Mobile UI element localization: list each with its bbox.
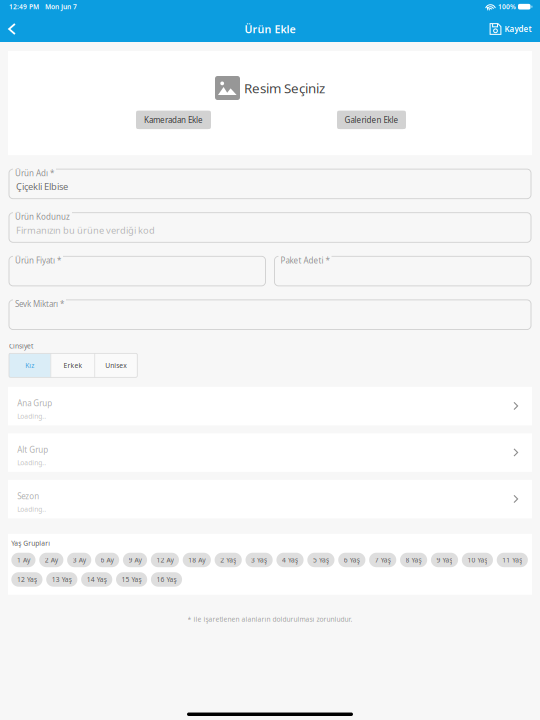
button[interactable]: 1 Ay	[11, 553, 35, 567]
button[interactable]: 2 Ay	[39, 553, 63, 567]
staticText: Firmanızın bu ürüne verdiği kod	[16, 224, 155, 236]
staticText: Galeriden Ekle	[344, 114, 398, 125]
button[interactable]: 10 Yaş	[462, 553, 493, 567]
staticText: Çiçekli Elbise	[16, 180, 68, 193]
staticText: Ürün Adı *	[15, 168, 54, 178]
button[interactable]: 2 Yaş	[215, 553, 242, 567]
button[interactable]: Sezon	[8, 480, 532, 518]
staticText: 12 Ay	[156, 555, 173, 564]
staticText: 9 Yaş	[436, 555, 452, 564]
staticText: Kaydet	[504, 24, 531, 34]
staticText: 12:49 PM Mon Jun 7	[9, 2, 77, 11]
staticText: 18 Ay	[188, 555, 205, 564]
staticText: Ana Grup	[17, 398, 52, 408]
button[interactable]: 18 Ay	[183, 553, 211, 567]
staticText: 6 Yaş	[344, 555, 360, 564]
button[interactable]: 9 Yaş	[431, 553, 458, 567]
staticText: 13 Yaş	[52, 575, 72, 584]
staticText: 7 Yaş	[375, 555, 391, 564]
staticText: Unisex	[105, 361, 127, 370]
button[interactable]: 11 Yaş	[497, 553, 528, 567]
staticText: 15 Yaş	[122, 575, 142, 584]
button[interactable]: 4 Yaş	[276, 553, 304, 567]
button[interactable]: 7 Yaş	[369, 553, 396, 567]
staticText: Kız	[25, 361, 34, 370]
button[interactable]: 15 Yaş	[116, 572, 147, 587]
button[interactable]: 16 Yaş	[151, 572, 182, 587]
button[interactable]: Erkek	[51, 353, 94, 377]
button[interactable]: Kaydet	[489, 16, 531, 42]
staticText: Ürün Fiyatı *	[15, 255, 61, 266]
staticText: 11 Yaş	[502, 555, 522, 564]
staticText: 3 Ay	[73, 555, 86, 564]
staticText: 2 Yaş	[220, 555, 236, 564]
staticText: 14 Yaş	[87, 575, 107, 584]
staticText: Alt Grup	[17, 444, 48, 455]
staticText: Cinsiyet	[9, 341, 33, 350]
button[interactable]: 12 Ay	[151, 553, 179, 567]
button[interactable]: 8 Yaş	[400, 553, 427, 567]
staticText: Sezon	[17, 491, 39, 501]
staticText: Paket Adeti *	[280, 255, 329, 266]
staticText: Ürün Ekle	[244, 22, 295, 36]
staticText: Loading..	[17, 458, 46, 467]
button[interactable]: 14 Yaş	[81, 572, 112, 587]
staticText: 3 Yaş	[251, 555, 267, 564]
staticText: 100%	[498, 2, 516, 11]
staticText: 4 Yaş	[282, 555, 298, 564]
button[interactable]: Kameradan Ekle	[136, 111, 211, 129]
staticText: 5 Yaş	[313, 555, 329, 564]
staticText: 10 Yaş	[467, 555, 487, 564]
staticText: Resim Seçiniz	[244, 79, 325, 97]
button[interactable]: Kız	[9, 353, 50, 377]
button[interactable]: 6 Yaş	[338, 553, 365, 567]
staticText: Ürün Kodunuz	[15, 211, 70, 222]
staticText: * ile işaretlenen alanların doldurulması…	[187, 615, 352, 624]
staticText: 6 Ay	[101, 555, 114, 564]
staticText: 12 Yaş	[17, 575, 37, 584]
button[interactable]: 13 Yaş	[46, 572, 77, 587]
button[interactable]: Alt Grup	[8, 433, 532, 472]
button[interactable]: 3 Ay	[67, 553, 91, 567]
button[interactable]: Back	[0, 16, 24, 42]
button[interactable]: 6 Ay	[95, 553, 119, 567]
staticText: Sevk Miktarı *	[15, 299, 64, 309]
button[interactable]: 12 Yaş	[11, 572, 42, 587]
button[interactable]: Galeriden Ekle	[337, 111, 406, 129]
staticText: 2 Ay	[45, 555, 58, 564]
button[interactable]: 5 Yaş	[307, 553, 334, 567]
staticText: Kameradan Ekle	[144, 114, 203, 125]
staticText: 8 Yaş	[406, 555, 422, 564]
button[interactable]: 9 Ay	[123, 553, 147, 567]
button[interactable]: Ana Grup	[8, 387, 532, 425]
button[interactable]: 3 Yaş	[245, 553, 273, 567]
button[interactable]: Unisex	[95, 353, 137, 377]
staticText: 16 Yaş	[156, 575, 176, 584]
staticText: 9 Ay	[128, 555, 141, 564]
staticText: Loading..	[17, 412, 46, 421]
staticText: Erkek	[63, 361, 82, 370]
staticText: 1 Ay	[17, 555, 30, 564]
staticText: Yaş Grupları	[11, 539, 50, 548]
staticText: Loading..	[17, 505, 46, 514]
